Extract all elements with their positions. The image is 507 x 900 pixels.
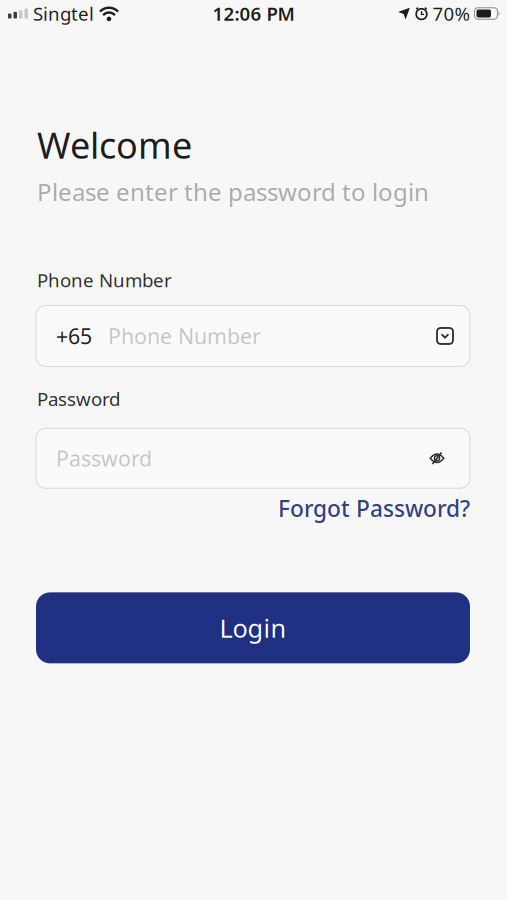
staticText: Login xyxy=(219,611,286,645)
button[interactable]: Select country code xyxy=(437,328,470,344)
staticText: Singtel xyxy=(33,1,94,26)
staticText: Password xyxy=(37,386,120,411)
staticText: Welcome xyxy=(37,121,192,169)
button[interactable]: +65 xyxy=(36,305,470,366)
staticText: Please enter the password to login xyxy=(37,176,429,208)
button[interactable]: Forgot Password? xyxy=(278,493,470,523)
staticText: Password xyxy=(56,444,152,472)
button[interactable]: Password xyxy=(36,428,470,488)
staticText: Forgot Password? xyxy=(278,493,470,523)
staticText: Phone Number xyxy=(37,268,172,292)
staticText: 12:06 PM xyxy=(212,1,294,26)
staticText: Phone Number xyxy=(108,322,261,350)
button[interactable]: Login xyxy=(36,592,470,663)
staticText: +65 xyxy=(56,322,92,350)
staticText: 70% xyxy=(432,1,470,26)
button[interactable]: Show password xyxy=(429,451,470,465)
